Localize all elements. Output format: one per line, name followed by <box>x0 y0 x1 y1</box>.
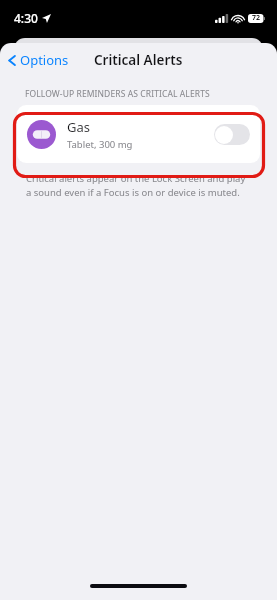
staticText: Gas <box>67 118 90 136</box>
button[interactable]: Medication <box>17 105 260 163</box>
button[interactable]: Options <box>0 47 77 73</box>
staticText: Options <box>20 51 69 69</box>
button[interactable]: Critical alerts toggle, off <box>214 124 250 145</box>
staticText: 4:30 <box>14 10 38 26</box>
staticText: FOLLOW-UP REMINDERS AS CRITICAL ALERTS <box>25 88 210 100</box>
staticText: 72 <box>252 13 261 23</box>
staticText: Tablet, 300 mg <box>67 138 133 151</box>
staticText: Critical alerts appear on the Lock Scree… <box>26 172 251 199</box>
other: Medication <box>27 120 56 149</box>
staticText: Critical Alerts <box>94 51 183 69</box>
